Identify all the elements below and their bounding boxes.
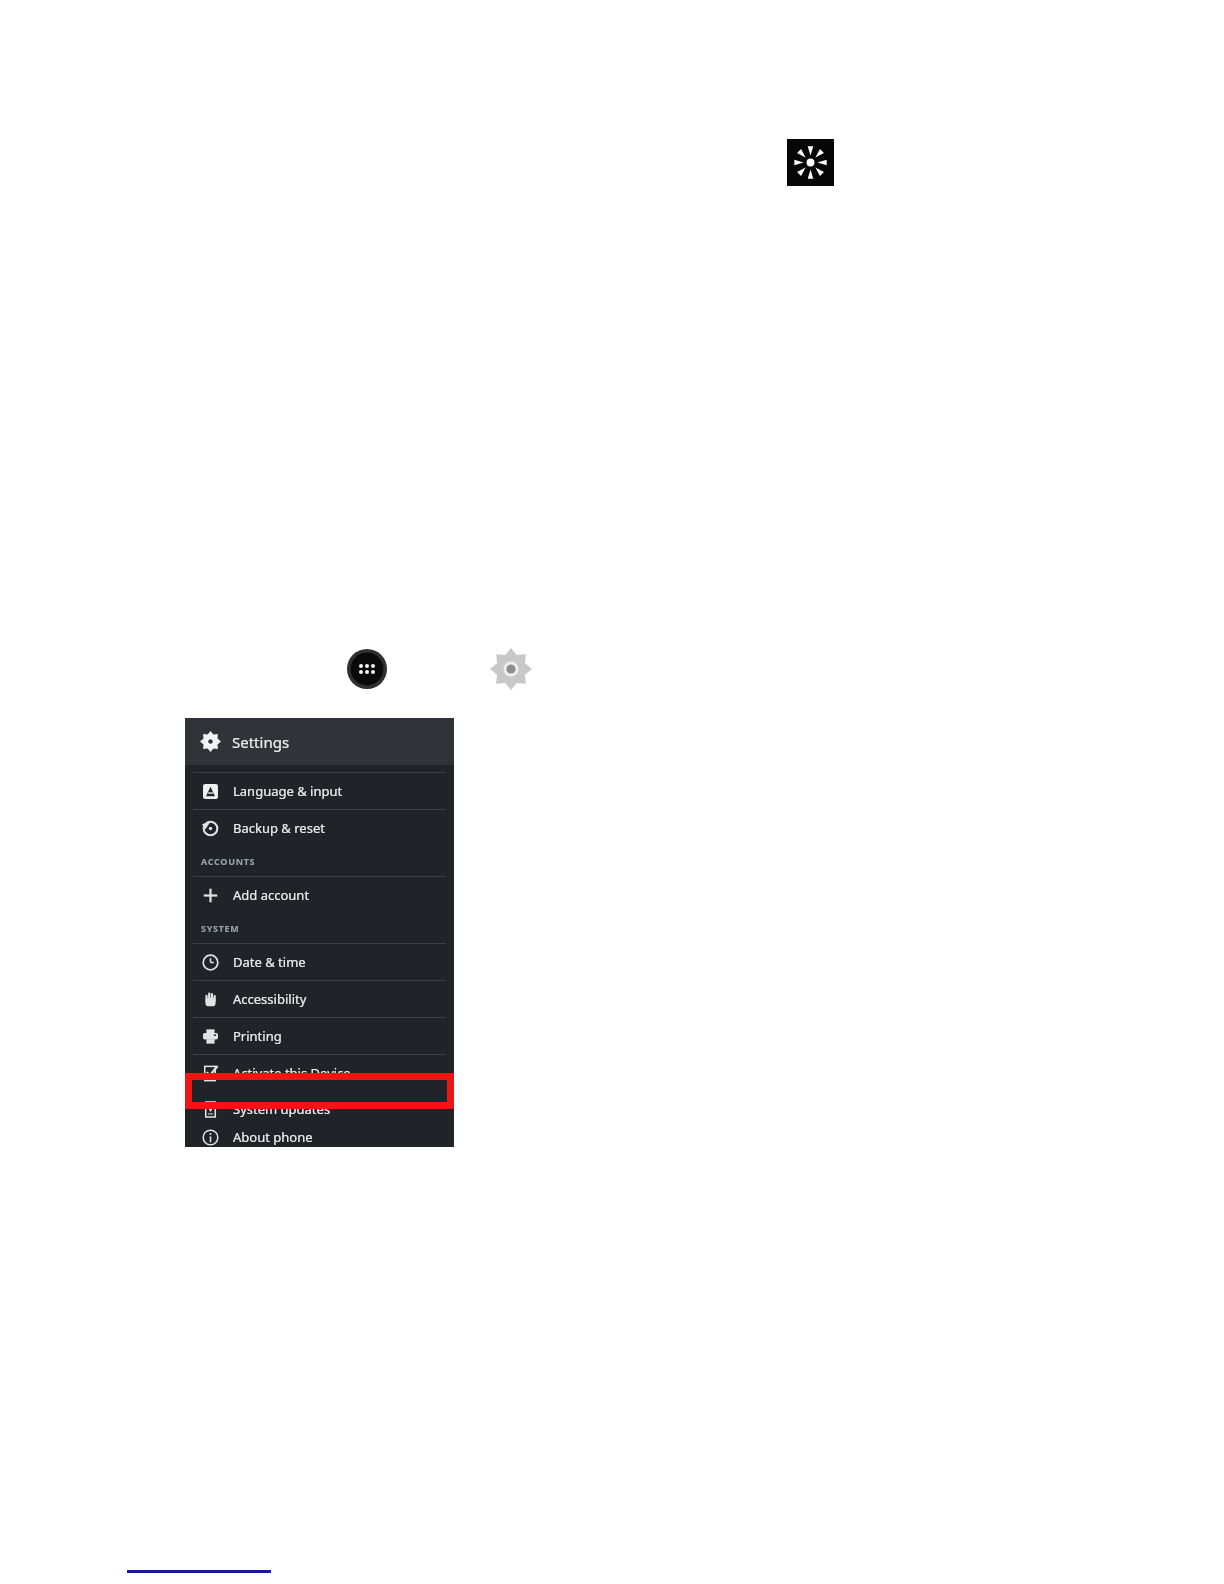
staticText: Printing — [233, 1027, 282, 1045]
button[interactable]: Printing — [185, 1018, 454, 1054]
staticText: System updates — [233, 1100, 331, 1118]
staticText: Backup & reset — [233, 819, 325, 837]
staticText: About phone — [233, 1128, 313, 1146]
button[interactable]: Settings — [185, 718, 454, 765]
staticText: Settings — [232, 732, 290, 752]
button[interactable]: All apps — [347, 649, 387, 689]
button[interactable]: Brightness — [787, 139, 834, 186]
staticText: SYSTEM — [201, 922, 240, 934]
button[interactable]: Accessibility — [185, 981, 454, 1017]
button[interactable]: Activate this Device — [185, 1055, 454, 1091]
button[interactable]: About phone — [185, 1127, 454, 1147]
button[interactable]: Language & input — [185, 773, 454, 809]
button[interactable]: Backup & reset — [185, 810, 454, 846]
button[interactable]: Settings — [489, 647, 533, 691]
button[interactable]: Date & time — [185, 944, 454, 980]
staticText: Add account — [233, 886, 310, 904]
button[interactable]: System updates — [185, 1091, 454, 1127]
staticText: Language & input — [233, 782, 343, 800]
button[interactable]: Add account — [185, 877, 454, 913]
staticText: ACCOUNTS — [201, 855, 256, 867]
staticText: Activate this Device — [233, 1064, 351, 1082]
staticText: Date & time — [233, 953, 306, 971]
staticText: Accessibility — [233, 990, 307, 1008]
